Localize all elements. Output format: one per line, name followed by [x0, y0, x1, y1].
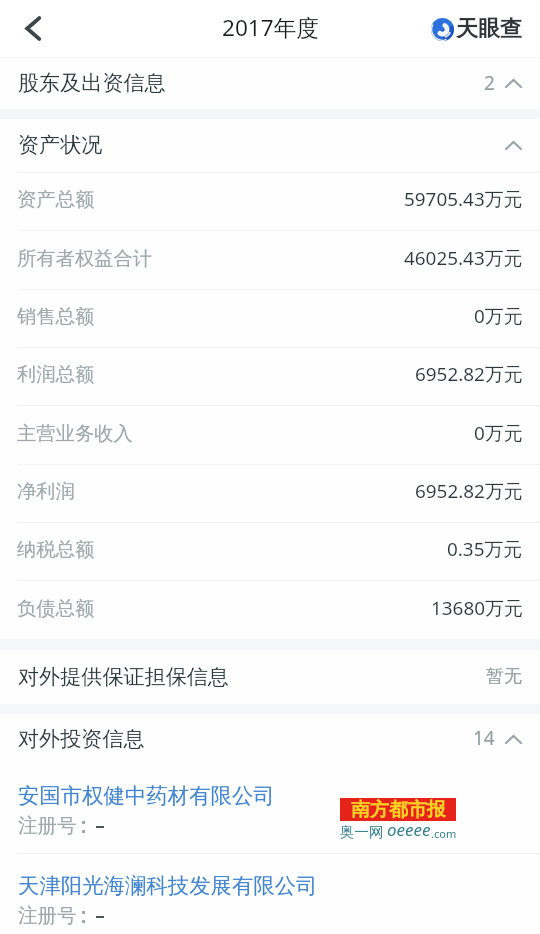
staticText: 0.35万元: [447, 536, 523, 562]
staticText: 资产状况: [18, 132, 103, 159]
button[interactable]: 天眼查: [431, 15, 522, 43]
staticText: 纳税总额: [17, 537, 95, 561]
button[interactable]: 天津阳光海澜科技发展有限公司: [0, 854, 540, 934]
staticText: 6952.82万元: [415, 361, 523, 387]
staticText: oeeee: [387, 818, 431, 841]
staticText: 净利润: [17, 479, 75, 503]
staticText: 0万元: [474, 303, 523, 329]
button[interactable]: 资产状况: [0, 119, 540, 172]
button[interactable]: 安国市权健中药材有限公司: [0, 764, 540, 854]
button[interactable]: Back: [9, 6, 55, 52]
staticText: 销售总额: [17, 304, 95, 328]
staticText: 利润总额: [17, 362, 95, 386]
staticText: 注册号: [18, 903, 77, 928]
button[interactable]: 对外投资信息: [0, 714, 540, 764]
button[interactable]: 股东及出资信息: [0, 58, 540, 109]
staticText: .com: [431, 826, 457, 841]
staticText: 所有者权益合计: [17, 246, 153, 270]
staticText: 奥一网: [340, 823, 384, 841]
staticText: 14: [473, 725, 495, 751]
staticText: 59705.43万元: [404, 186, 523, 212]
staticText: 资产总额: [17, 187, 95, 211]
staticText: 主营业务收入: [17, 421, 133, 445]
staticText: 6952.82万元: [415, 478, 523, 504]
staticText: 2: [484, 70, 495, 96]
staticText: 对外提供保证担保信息: [18, 664, 229, 691]
staticText: 注册号: [18, 813, 77, 838]
staticText: 暂无: [486, 665, 522, 688]
button[interactable]: 对外提供保证担保信息: [0, 650, 540, 704]
staticText: 天津阳光海澜科技发展有限公司: [18, 872, 318, 899]
staticText: 负债总额: [17, 596, 95, 620]
staticText: 0万元: [474, 420, 523, 446]
staticText: 46025.43万元: [404, 245, 523, 271]
staticText: 2017年度: [222, 12, 319, 43]
staticText: 股东及出资信息: [18, 70, 166, 97]
staticText: 安国市权健中药材有限公司: [18, 782, 275, 809]
staticText: 13680万元: [431, 595, 523, 621]
staticText: 对外投资信息: [18, 726, 145, 753]
staticText: 南方都市报: [351, 798, 446, 821]
staticText: 天眼查: [456, 15, 522, 43]
